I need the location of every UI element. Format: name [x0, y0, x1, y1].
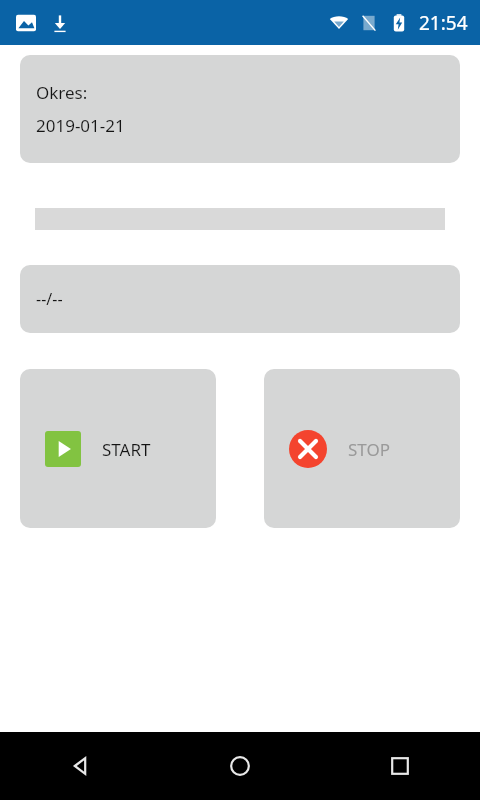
staticText: 2019-01-21 [36, 114, 125, 137]
staticText: START [102, 438, 151, 461]
button[interactable]: Back [0, 732, 160, 800]
staticText: --/-- [36, 288, 63, 310]
other: Start [45, 431, 81, 467]
staticText: STOP [348, 438, 391, 461]
button[interactable]: Start [20, 369, 216, 528]
other: Stop [289, 430, 327, 468]
button[interactable]: --/-- [20, 265, 460, 333]
staticText: Okres: [36, 81, 88, 104]
button[interactable]: Stop [264, 369, 460, 528]
button[interactable]: Okres: [20, 55, 460, 163]
staticText: 21:54 [419, 10, 468, 36]
button[interactable]: Recents [320, 732, 480, 800]
button[interactable]: Home [160, 732, 320, 800]
